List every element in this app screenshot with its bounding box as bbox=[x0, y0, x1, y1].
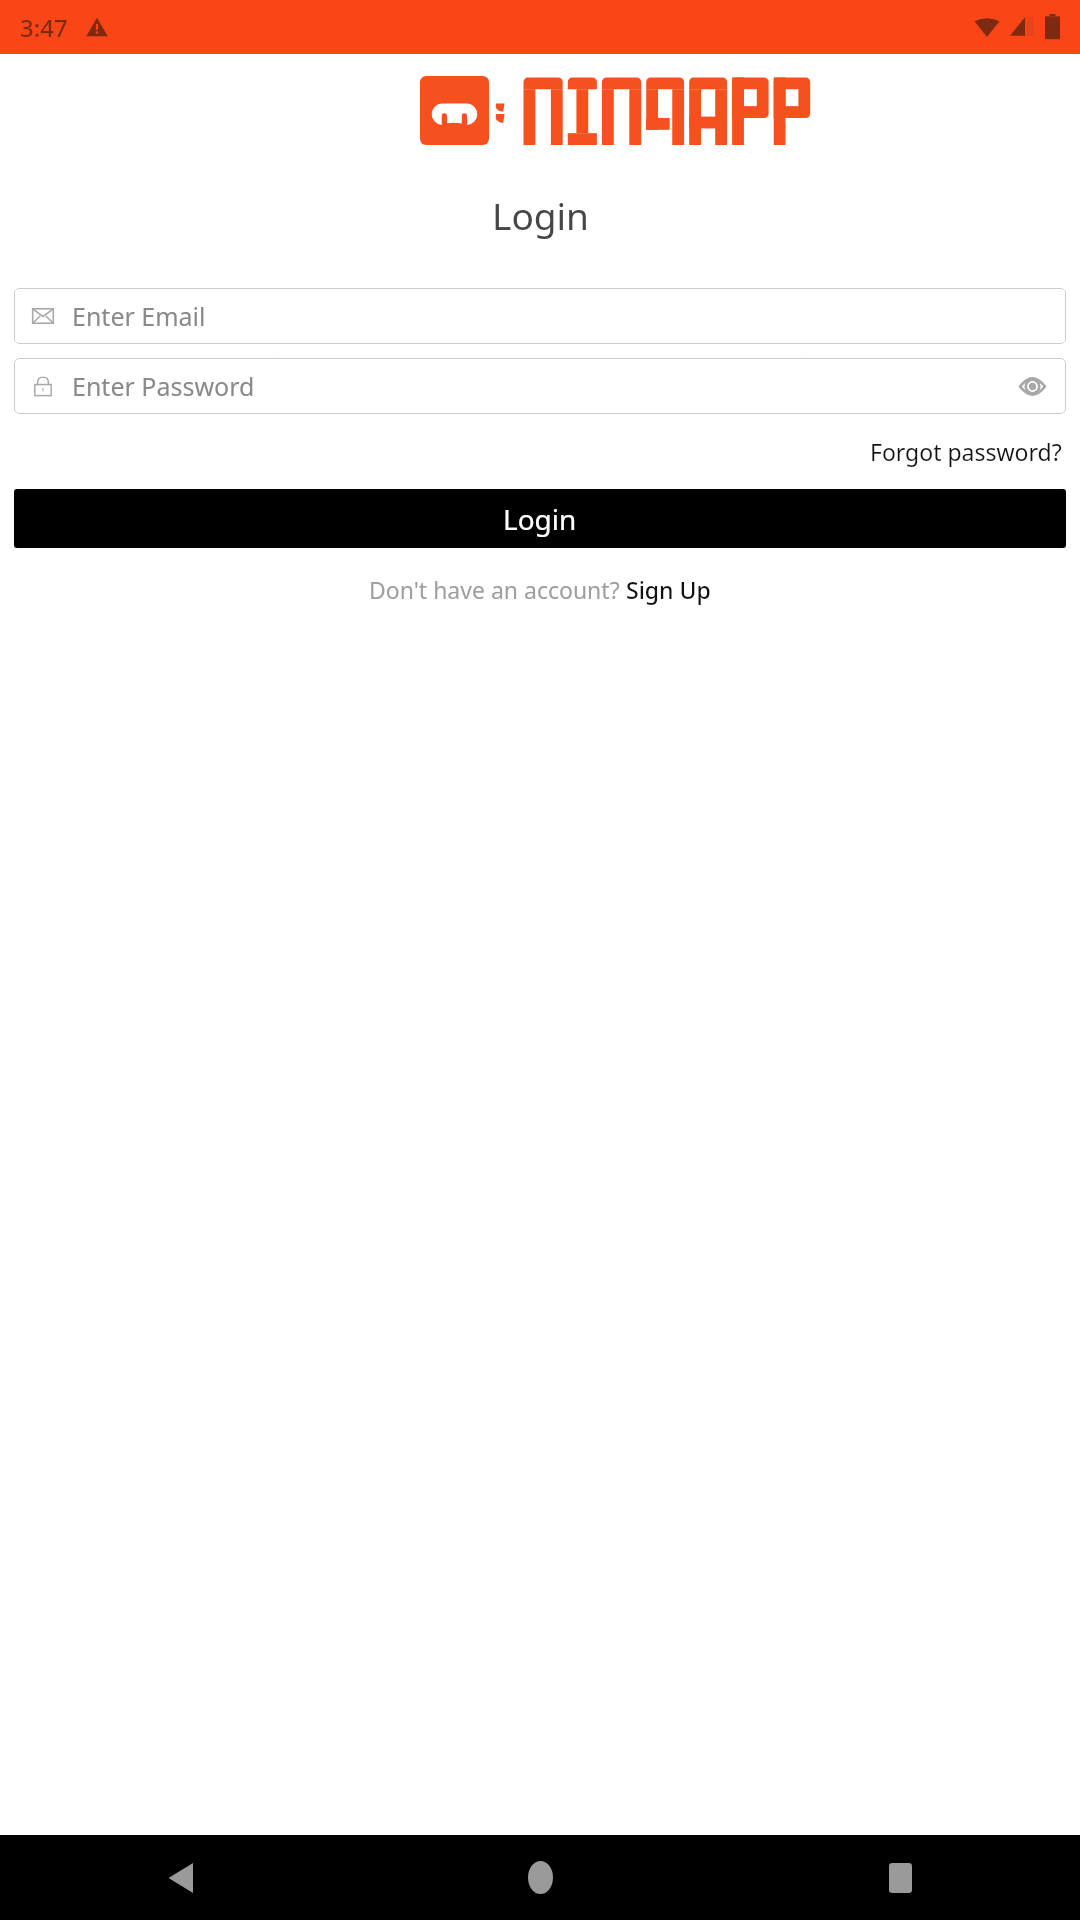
button[interactable]: Enter Password bbox=[14, 358, 1066, 414]
staticText: Sign Up bbox=[626, 574, 711, 605]
staticText: Enter Password bbox=[72, 369, 255, 403]
staticText: Login bbox=[503, 500, 577, 538]
button[interactable]: Login bbox=[14, 489, 1066, 548]
staticText: Don't have an account? bbox=[369, 574, 626, 605]
button[interactable]: Forgot password? bbox=[866, 430, 1066, 473]
staticText: Enter Email bbox=[72, 299, 206, 333]
button[interactable]: Home bbox=[360, 1835, 720, 1920]
button[interactable]: Enter Email bbox=[14, 288, 1066, 344]
button[interactable]: Show password bbox=[1015, 369, 1049, 403]
staticText: Forgot password? bbox=[870, 436, 1062, 467]
button[interactable]: Recents bbox=[720, 1835, 1080, 1920]
staticText: 3:47 bbox=[20, 11, 68, 44]
button[interactable]: Sign Up bbox=[626, 574, 711, 605]
button[interactable]: Back bbox=[0, 1835, 360, 1920]
staticText: Login bbox=[492, 190, 589, 240]
